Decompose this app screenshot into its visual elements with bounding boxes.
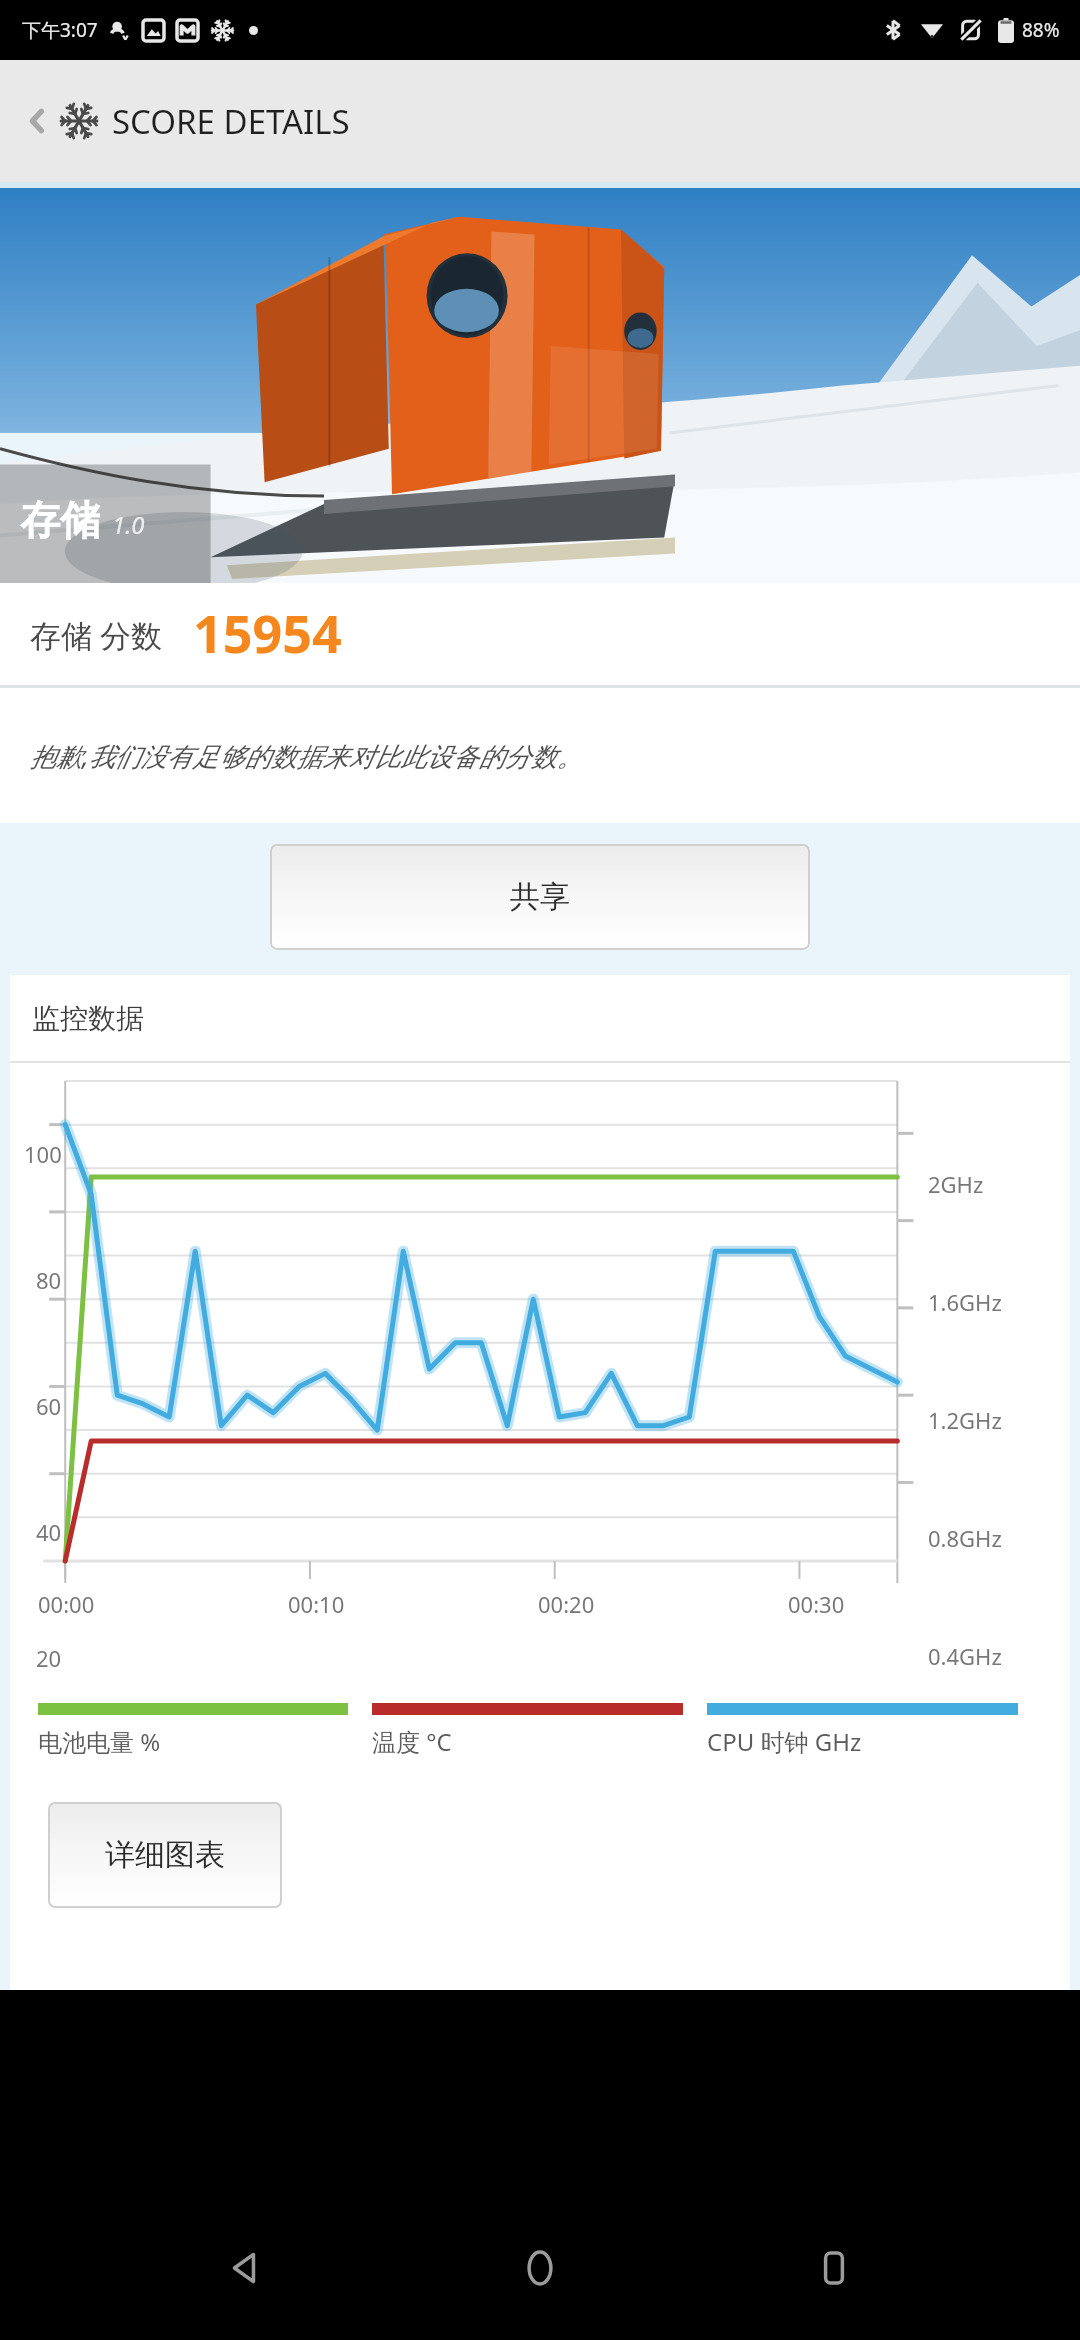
staticText: 20	[36, 1643, 62, 1673]
staticText: 00:30	[788, 1589, 845, 1619]
staticText: 80	[36, 1265, 62, 1295]
staticText: 1.6GHz	[928, 1287, 1002, 1317]
staticText: 00:00	[38, 1589, 95, 1619]
staticText: 15954	[193, 597, 342, 668]
staticText: 下午3:07	[22, 17, 98, 43]
button[interactable]: 共享	[270, 844, 810, 950]
staticText: SCORE DETAILS	[112, 99, 350, 144]
staticText: 60	[36, 1391, 62, 1421]
button[interactable]: Recents	[786, 2220, 882, 2316]
staticText: 00:20	[538, 1589, 595, 1619]
staticText: 2GHz	[928, 1169, 984, 1199]
staticText: 100	[24, 1139, 62, 1169]
staticText: 0.8GHz	[928, 1523, 1002, 1553]
staticText: 1.2GHz	[928, 1405, 1002, 1435]
staticText: 存储 分数	[30, 614, 163, 656]
staticText: 详细图表	[105, 1836, 225, 1874]
staticText: 88%	[1022, 17, 1060, 43]
button[interactable]: Back	[18, 101, 58, 141]
button[interactable]: 详细图表	[48, 1802, 282, 1908]
staticText: 抱歉,我们没有足够的数据来对比此设备的分数。	[30, 738, 583, 774]
staticText: 温度 °C	[372, 1725, 452, 1758]
staticText: CPU 时钟 GHz	[707, 1725, 862, 1758]
staticText: 40	[36, 1517, 62, 1547]
staticText: 0.4GHz	[928, 1641, 1002, 1671]
staticText: 1.0	[112, 508, 145, 541]
button[interactable]: Home	[492, 2220, 588, 2316]
staticText: 监控数据	[32, 1001, 144, 1036]
staticText: 00:10	[288, 1589, 345, 1619]
staticText: 电池电量 %	[38, 1725, 161, 1758]
button[interactable]: Back	[198, 2220, 294, 2316]
staticText: 存储	[20, 495, 100, 545]
staticText: 共享	[510, 878, 570, 916]
